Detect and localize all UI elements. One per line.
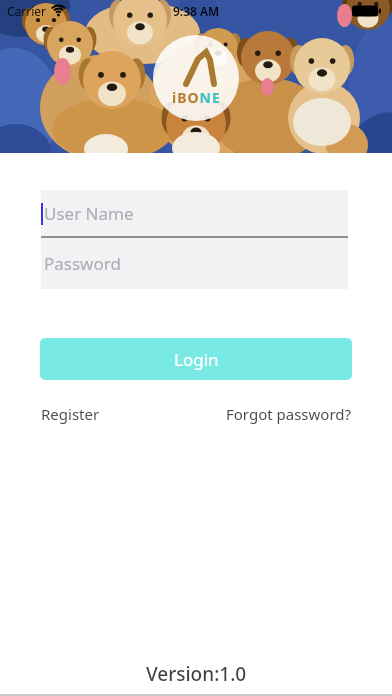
button[interactable]: Register <box>41 404 100 424</box>
staticText: Register <box>41 404 100 424</box>
button[interactable]: User Name <box>41 190 348 236</box>
staticText: Carrier <box>7 3 47 19</box>
staticText: Forgot password? <box>226 404 352 424</box>
staticText: Password <box>44 252 121 275</box>
staticText: Login <box>174 348 219 371</box>
button[interactable]: Forgot password? <box>226 404 352 424</box>
staticText: User Name <box>44 202 134 225</box>
button[interactable]: Password <box>41 238 348 289</box>
staticText: Version:1.0 <box>146 661 247 687</box>
staticText: iBONE <box>172 88 221 107</box>
button[interactable]: Login <box>40 338 352 380</box>
staticText: 9:38 AM <box>173 3 220 19</box>
